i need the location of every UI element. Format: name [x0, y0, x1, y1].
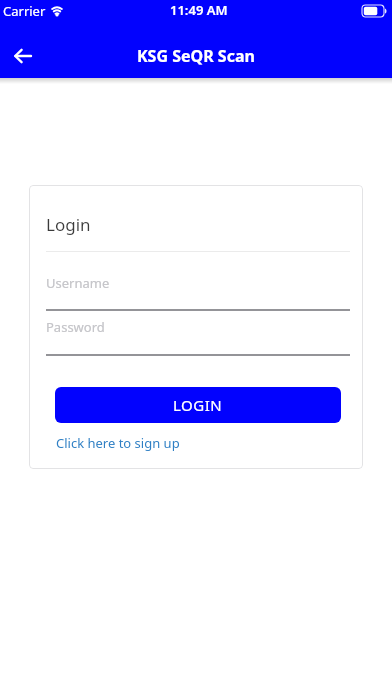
button[interactable] — [8, 41, 38, 71]
staticText: 11:49 AM — [170, 1, 228, 19]
staticText: Password — [46, 318, 105, 336]
button[interactable]: Click here to sign up — [56, 434, 180, 452]
staticText: LOGIN — [173, 395, 223, 415]
staticText: Login — [46, 213, 91, 236]
staticText: Username — [46, 274, 110, 292]
button[interactable]: LOGIN — [55, 387, 341, 423]
staticText: KSG SeQR Scan — [137, 45, 255, 67]
button[interactable]: Username — [46, 252, 350, 311]
staticText: Carrier — [3, 2, 46, 20]
button[interactable]: Password — [46, 311, 350, 356]
